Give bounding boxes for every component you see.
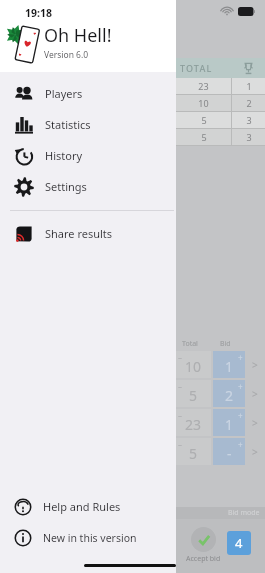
staticText: 2 — [246, 97, 252, 109]
staticText: Version 6.0 — [44, 49, 89, 61]
staticText: 23 — [198, 80, 209, 92]
button[interactable]: History — [0, 140, 176, 171]
staticText: 1 — [225, 415, 234, 434]
staticText: 1 — [225, 357, 234, 376]
staticText: – — [178, 381, 182, 392]
staticText: 3 — [246, 131, 252, 143]
staticText: + — [238, 410, 243, 421]
staticText: 5 — [189, 386, 198, 405]
staticText: Total — [182, 339, 198, 349]
staticText: History — [45, 148, 83, 163]
staticText: New in this version — [43, 531, 137, 545]
staticText: Share results — [45, 226, 113, 241]
staticText: 19:18 — [25, 6, 52, 20]
button[interactable]: Share results — [0, 218, 176, 249]
staticText: 3 — [246, 114, 252, 126]
staticText: + — [238, 381, 243, 392]
staticText: Settings — [45, 179, 87, 194]
staticText: Bid mode — [228, 508, 260, 518]
staticText: Help and Rules — [43, 499, 121, 514]
staticText: Players — [45, 86, 83, 101]
button[interactable]: Players — [0, 78, 176, 109]
staticText: > — [252, 445, 258, 459]
staticText: – — [178, 439, 182, 450]
staticText: 10 — [198, 97, 209, 109]
staticText: 5 — [201, 131, 207, 143]
staticText: > — [252, 387, 258, 401]
staticText: 1 — [246, 80, 252, 92]
staticText: Bid — [220, 339, 231, 349]
staticText: Statistics — [45, 117, 91, 132]
button[interactable]: New in this version — [0, 522, 176, 553]
staticText: 5 — [189, 444, 198, 463]
button[interactable]: Settings — [0, 171, 176, 202]
staticText: – — [178, 352, 182, 363]
staticText: – — [178, 410, 182, 421]
staticText: + — [238, 439, 243, 450]
staticText: TOTAL — [180, 62, 231, 74]
staticText: 23 — [185, 415, 202, 434]
staticText: Oh Hell! — [44, 23, 112, 48]
staticText: > — [252, 358, 258, 372]
staticText: > — [252, 416, 258, 430]
staticText: 5 — [201, 114, 207, 126]
button[interactable]: Help and Rules — [0, 491, 176, 522]
staticText: + — [238, 352, 243, 363]
staticText: - — [227, 444, 232, 463]
staticText: 2 — [225, 386, 234, 405]
button[interactable]: Statistics — [0, 109, 176, 140]
staticText: Accept bid — [186, 554, 221, 564]
staticText: 4 — [235, 534, 243, 552]
staticText: 10 — [185, 357, 202, 376]
